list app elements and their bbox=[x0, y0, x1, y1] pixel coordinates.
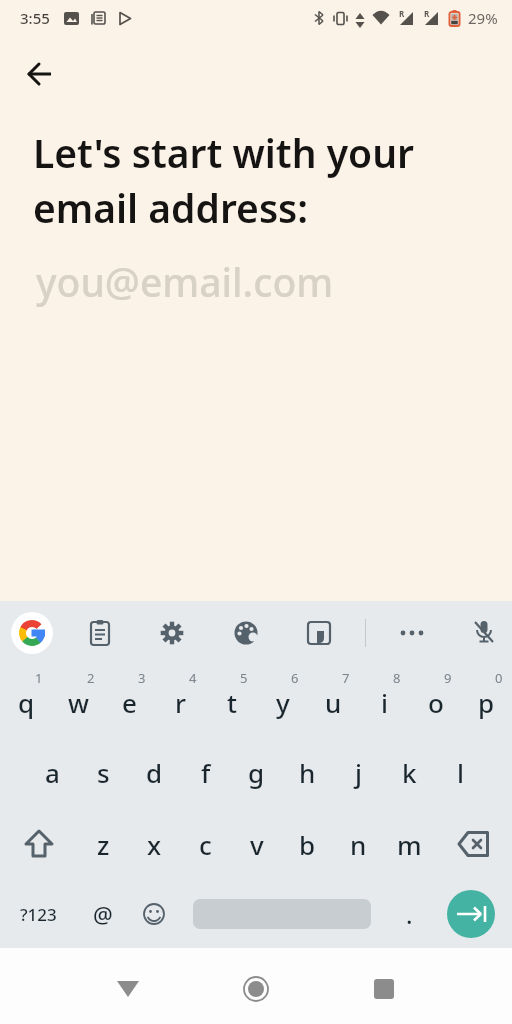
staticText: @ bbox=[93, 899, 113, 929]
staticText: q bbox=[18, 685, 35, 720]
button[interactable]: x bbox=[129, 808, 180, 880]
button[interactable] bbox=[16, 50, 64, 98]
staticText: o bbox=[428, 685, 444, 720]
button[interactable] bbox=[360, 965, 408, 1013]
staticText: g bbox=[248, 755, 265, 790]
button[interactable] bbox=[104, 965, 152, 1013]
button[interactable]: s bbox=[78, 736, 129, 808]
button[interactable]: b bbox=[282, 808, 333, 880]
button[interactable]: c bbox=[180, 808, 231, 880]
button[interactable]: e bbox=[104, 665, 155, 736]
staticText: h bbox=[299, 755, 316, 790]
staticText: d bbox=[146, 755, 163, 790]
staticText: k bbox=[402, 755, 417, 790]
button[interactable]: h bbox=[282, 736, 333, 808]
button[interactable]: ?123 bbox=[0, 880, 77, 948]
staticText: e bbox=[122, 685, 137, 720]
staticText: p bbox=[478, 685, 495, 720]
staticText: c bbox=[199, 827, 212, 862]
staticText: 6 bbox=[291, 669, 299, 687]
staticText: 29% bbox=[468, 8, 498, 28]
staticText: w bbox=[68, 685, 89, 720]
staticText: 3:55 bbox=[20, 8, 50, 28]
staticText: j bbox=[355, 755, 363, 790]
staticText: 4 bbox=[189, 669, 197, 687]
button[interactable]: y bbox=[257, 665, 308, 736]
button[interactable] bbox=[224, 611, 268, 655]
staticText: 7 bbox=[342, 669, 350, 687]
button[interactable]: m bbox=[384, 808, 435, 880]
button[interactable]: n bbox=[333, 808, 384, 880]
staticText: x bbox=[147, 827, 162, 862]
button[interactable]: u bbox=[308, 665, 359, 736]
button[interactable]: q bbox=[0, 665, 52, 736]
staticText: R bbox=[424, 8, 430, 19]
button[interactable] bbox=[447, 890, 495, 938]
button[interactable] bbox=[0, 808, 77, 880]
staticText: y bbox=[276, 685, 290, 720]
button[interactable]: p bbox=[461, 665, 512, 736]
button[interactable]: d bbox=[129, 736, 180, 808]
staticText: m bbox=[397, 827, 422, 862]
button[interactable] bbox=[435, 808, 512, 880]
staticText: n bbox=[350, 827, 367, 862]
button[interactable] bbox=[297, 611, 341, 655]
staticText: . bbox=[406, 898, 413, 931]
staticText: b bbox=[299, 827, 316, 862]
staticText: s bbox=[97, 755, 110, 790]
staticText: t bbox=[227, 685, 237, 720]
button[interactable] bbox=[128, 880, 179, 948]
staticText: v bbox=[250, 827, 264, 862]
staticText: f bbox=[201, 755, 211, 790]
staticText: Let's start with your email address: bbox=[33, 126, 414, 235]
button[interactable]: o bbox=[410, 665, 461, 736]
staticText: 0 bbox=[495, 669, 503, 687]
staticText: u bbox=[325, 685, 342, 720]
staticText: 3 bbox=[138, 669, 146, 687]
staticText: ?123 bbox=[20, 903, 57, 926]
button[interactable]: i bbox=[359, 665, 410, 736]
button[interactable] bbox=[150, 611, 194, 655]
button[interactable]: f bbox=[180, 736, 231, 808]
staticText: l bbox=[457, 755, 465, 790]
staticText: 9 bbox=[444, 669, 452, 687]
staticText: i bbox=[381, 685, 389, 720]
button[interactable]: a bbox=[26, 736, 78, 808]
button[interactable]: k bbox=[384, 736, 435, 808]
button[interactable]: j bbox=[333, 736, 384, 808]
staticText: 5 bbox=[240, 669, 248, 687]
staticText: 2 bbox=[87, 669, 95, 687]
button[interactable] bbox=[232, 965, 280, 1013]
button[interactable]: r bbox=[155, 665, 206, 736]
button[interactable]: v bbox=[231, 808, 282, 880]
button[interactable]: g bbox=[231, 736, 282, 808]
button[interactable] bbox=[179, 880, 384, 948]
staticText: you@email.com bbox=[36, 255, 334, 308]
staticText: r bbox=[175, 685, 186, 720]
button[interactable] bbox=[11, 612, 53, 654]
button[interactable]: you@email.com bbox=[36, 255, 334, 308]
button[interactable]: t bbox=[206, 665, 257, 736]
button[interactable]: . bbox=[384, 880, 435, 948]
button[interactable]: w bbox=[52, 665, 104, 736]
button[interactable] bbox=[390, 611, 434, 655]
staticText: 8 bbox=[393, 669, 401, 687]
button[interactable]: l bbox=[435, 736, 486, 808]
staticText: z bbox=[97, 827, 110, 862]
button[interactable]: z bbox=[77, 808, 129, 880]
staticText: R bbox=[399, 8, 405, 19]
button[interactable]: @ bbox=[77, 880, 128, 948]
staticText: 1 bbox=[35, 669, 43, 687]
staticText: a bbox=[45, 755, 60, 790]
button[interactable] bbox=[78, 611, 122, 655]
button[interactable] bbox=[462, 611, 506, 655]
